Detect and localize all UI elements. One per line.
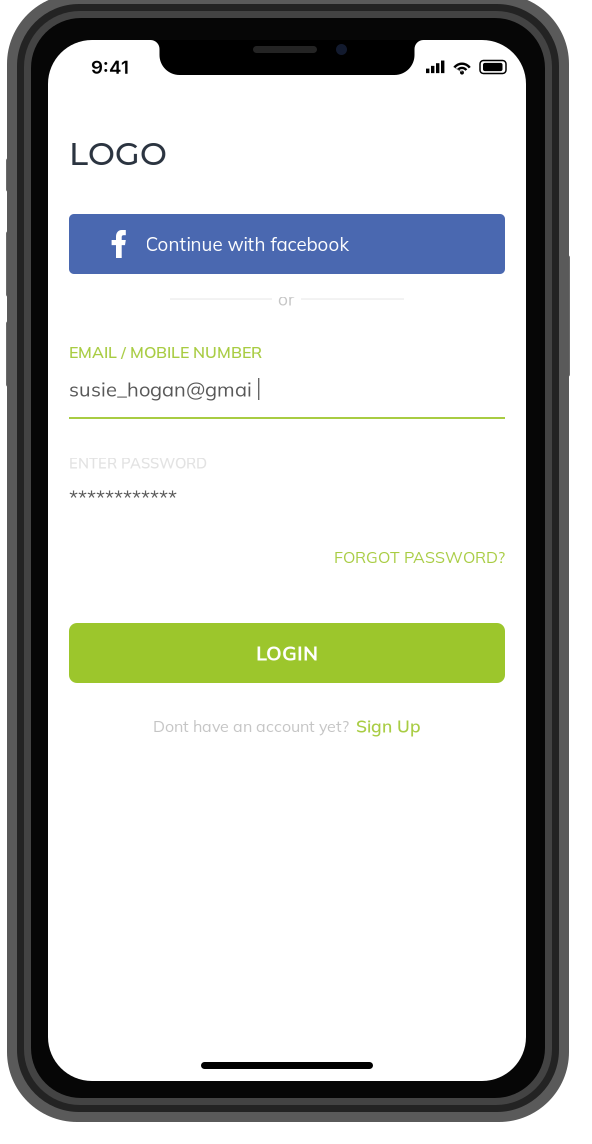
- staticText: ENTER PASSWORD: [69, 454, 207, 472]
- staticText: or: [278, 288, 294, 310]
- button[interactable]: Continue with facebook: [69, 214, 505, 274]
- staticText: LOGIN: [256, 640, 318, 666]
- staticText: susie_hogan@gmai: [69, 376, 252, 402]
- staticText: LOGO: [69, 134, 167, 173]
- staticText: EMAIL / MOBILE NUMBER: [69, 342, 262, 362]
- button[interactable]: Sign Up: [349, 715, 421, 737]
- staticText: Sign Up: [356, 715, 421, 737]
- staticText: FORGOT PASSWORD?: [334, 547, 505, 567]
- staticText: 9:41: [91, 56, 129, 78]
- button[interactable]: LOGIN: [69, 623, 505, 683]
- staticText: Continue with facebook: [145, 232, 349, 256]
- staticText: ************: [69, 484, 177, 510]
- staticText: Dont have an account yet?: [153, 716, 349, 736]
- button[interactable]: FORGOT PASSWORD?: [69, 546, 505, 568]
